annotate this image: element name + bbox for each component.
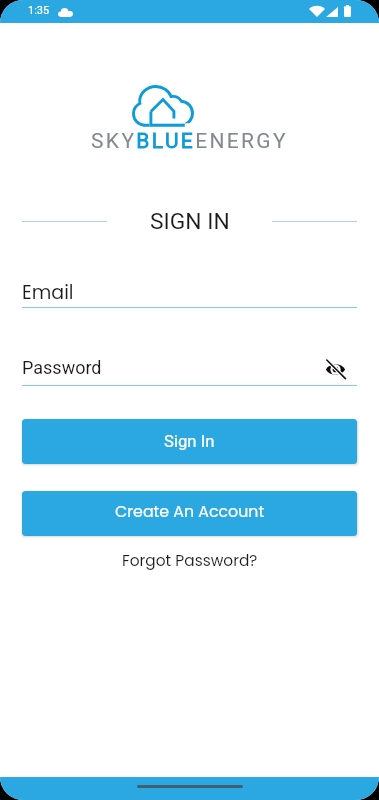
staticText: Sign In: [164, 432, 215, 452]
staticText: SIGN IN: [150, 208, 230, 235]
button[interactable]: Create An Account: [22, 491, 357, 536]
staticText: 1:35: [28, 4, 50, 17]
button[interactable]: Show password: [324, 358, 346, 380]
button[interactable]: Sign In: [22, 419, 357, 464]
staticText: Create An Account: [115, 500, 265, 522]
staticText: Email: [22, 279, 74, 306]
staticText: Forgot Password?: [122, 550, 258, 572]
staticText: SKYBLUEENERGY: [0, 129, 379, 154]
button[interactable]: Forgot Password?: [112, 547, 268, 575]
staticText: Password: [22, 357, 102, 378]
